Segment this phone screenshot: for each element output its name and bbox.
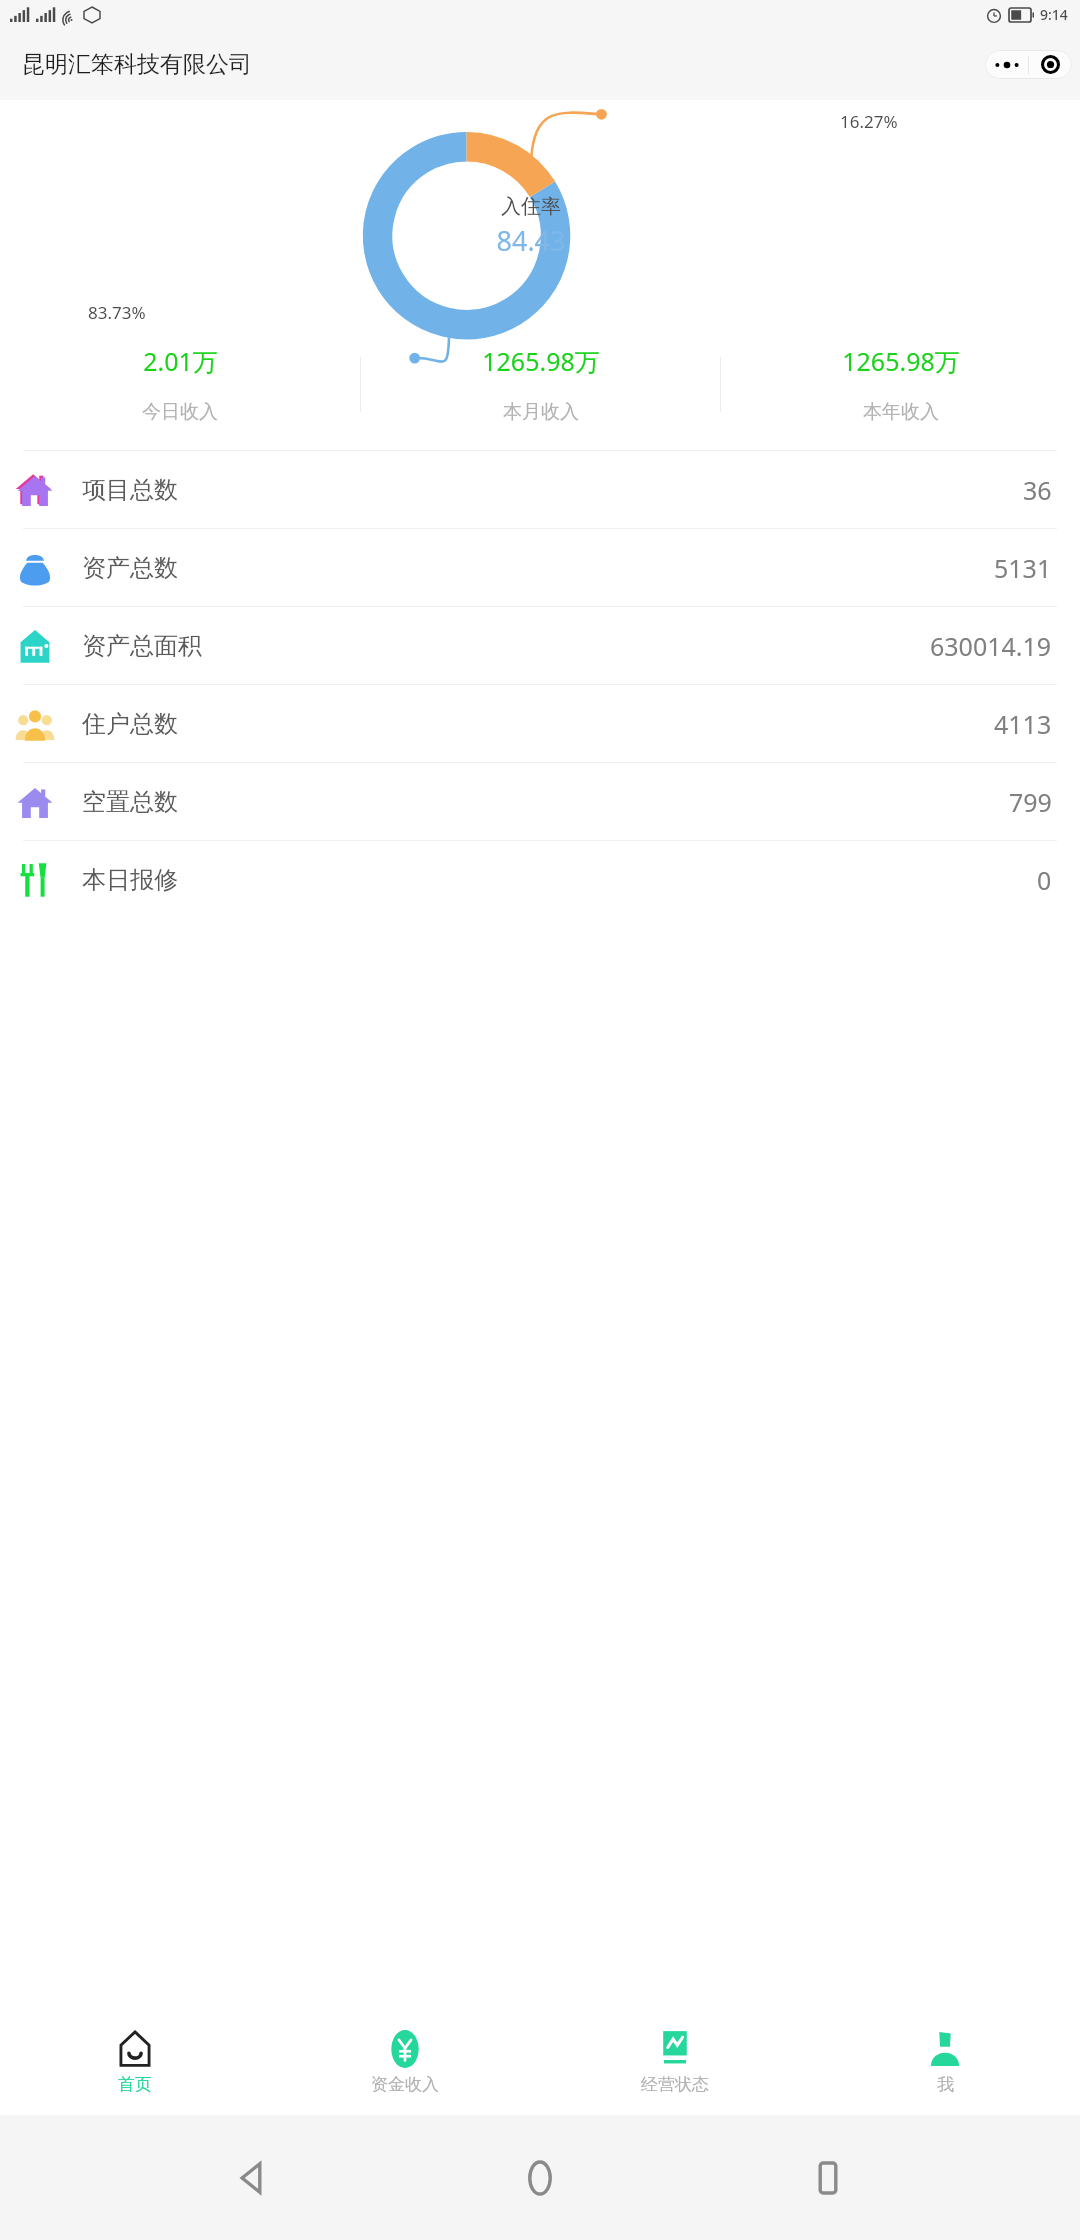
staticText: 今日收入: [142, 400, 218, 424]
staticText: 我: [937, 2074, 954, 2095]
staticText: 本日报修: [82, 865, 178, 895]
button[interactable]: 资产总数: [0, 529, 1080, 606]
staticText: 84.43: [496, 222, 566, 259]
staticText: 2.01万: [143, 344, 218, 378]
button[interactable]: Back: [218, 2143, 288, 2213]
staticText: 首页: [118, 2074, 152, 2095]
staticText: 16.27%: [840, 110, 898, 133]
staticText: 项目总数: [82, 475, 178, 505]
button[interactable]: 1265.98万: [361, 328, 720, 440]
button[interactable]: More: [985, 50, 1028, 79]
staticText: 9:14: [1040, 5, 1068, 24]
staticText: 住户总数: [82, 709, 178, 739]
button[interactable]: Home: [505, 2143, 575, 2213]
staticText: 本月收入: [503, 400, 579, 424]
staticText: 入住率: [501, 194, 561, 219]
button[interactable]: 1265.98万: [721, 328, 1080, 440]
staticText: 资金收入: [371, 2074, 439, 2095]
button[interactable]: 资金收入: [270, 2010, 540, 2115]
staticText: 5131: [994, 551, 1052, 585]
staticText: 资产总面积: [82, 631, 202, 661]
button[interactable]: 项目总数: [0, 451, 1080, 528]
staticText: 1265.98万: [842, 344, 960, 378]
button[interactable]: 资产总面积: [0, 607, 1080, 684]
staticText: 0: [1037, 863, 1052, 897]
staticText: 4113: [994, 707, 1052, 741]
staticText: 空置总数: [82, 787, 178, 817]
button[interactable]: 2.01万: [0, 328, 360, 440]
button[interactable]: Close: [1029, 50, 1072, 79]
staticText: 799: [1009, 785, 1052, 819]
button[interactable]: 首页: [0, 2010, 270, 2115]
staticText: 1265.98万: [482, 344, 600, 378]
staticText: 630014.19: [930, 629, 1052, 663]
staticText: 昆明汇笨科技有限公司: [22, 50, 252, 79]
button[interactable]: 本日报修: [0, 841, 1080, 918]
staticText: 36: [1023, 473, 1052, 507]
button[interactable]: 经营状态: [540, 2010, 810, 2115]
staticText: 经营状态: [641, 2074, 709, 2095]
button[interactable]: Recents: [793, 2143, 863, 2213]
button[interactable]: 空置总数: [0, 763, 1080, 840]
staticText: 83.73%: [88, 301, 146, 324]
staticText: 资产总数: [82, 553, 178, 583]
button[interactable]: 住户总数: [0, 685, 1080, 762]
staticText: 本年收入: [863, 400, 939, 424]
button[interactable]: 我: [810, 2010, 1080, 2115]
